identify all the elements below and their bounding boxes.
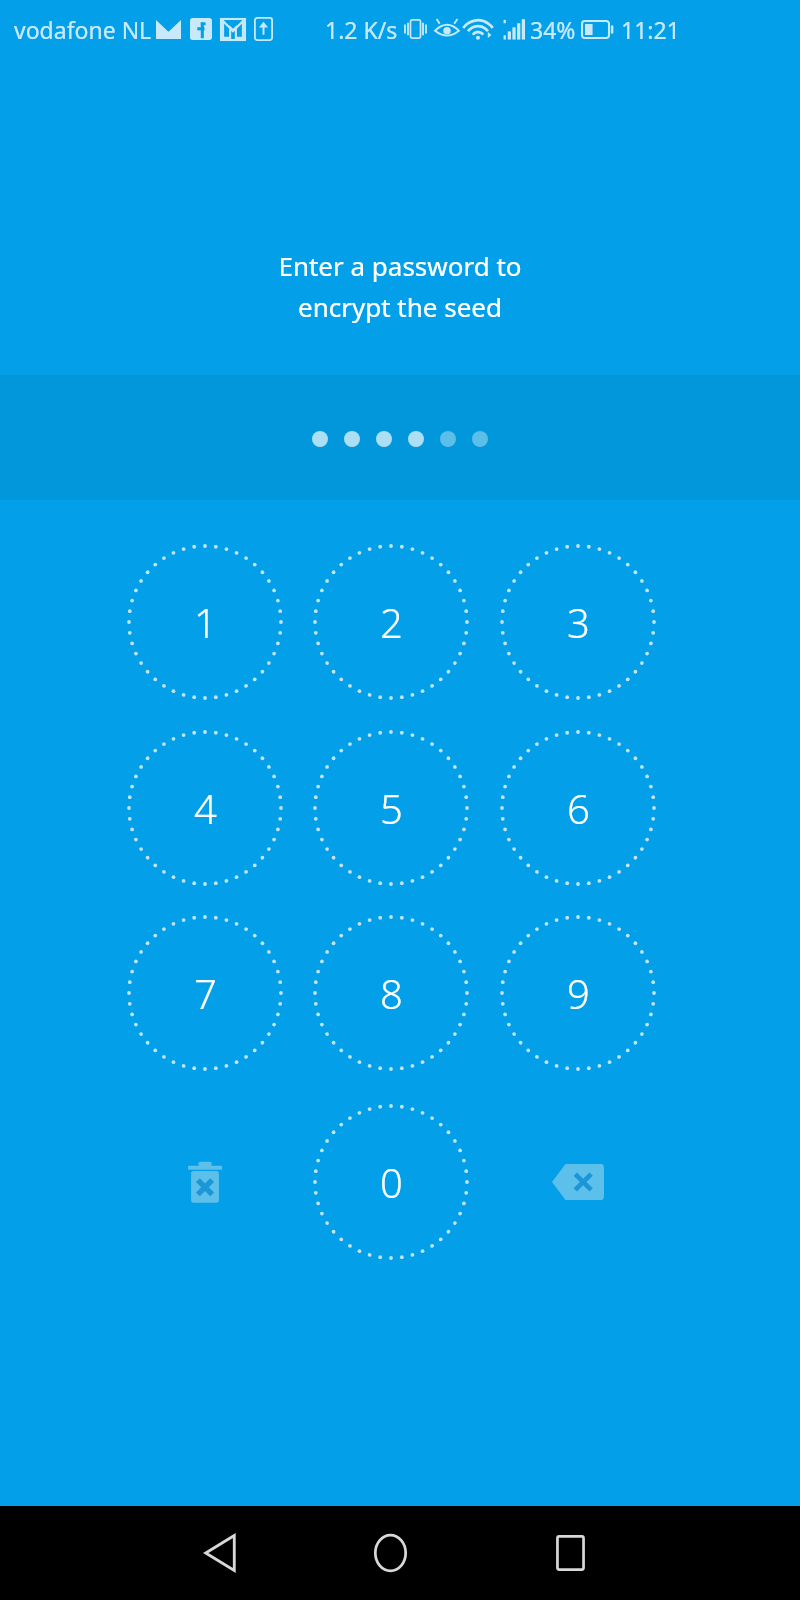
staticText: 8 xyxy=(380,966,403,1020)
button[interactable]: 4 xyxy=(127,730,283,886)
button[interactable]: 7 xyxy=(127,915,283,1071)
button[interactable]: Home xyxy=(343,1506,437,1600)
button[interactable]: 5 xyxy=(313,730,469,886)
button[interactable]: Clear password xyxy=(153,1130,257,1234)
staticText: 3 xyxy=(567,595,590,649)
staticText: 5 xyxy=(380,781,403,835)
button[interactable]: 8 xyxy=(313,915,469,1071)
staticText: 0 xyxy=(380,1155,403,1209)
button[interactable]: 9 xyxy=(500,915,656,1071)
staticText: 34% xyxy=(530,14,576,45)
staticText: 11:21 xyxy=(621,14,680,45)
staticText: 1 xyxy=(194,595,217,649)
staticText: 9 xyxy=(567,966,590,1020)
staticText: 2 xyxy=(380,595,403,649)
button[interactable]: 6 xyxy=(500,730,656,886)
button[interactable]: 2 xyxy=(313,544,469,700)
button[interactable]: 3 xyxy=(500,544,656,700)
button[interactable]: Back xyxy=(173,1506,267,1600)
staticText: 6 xyxy=(567,781,590,835)
staticText: 7 xyxy=(194,966,217,1020)
button[interactable]: Backspace xyxy=(526,1130,630,1234)
staticText: 1.2 K/s xyxy=(325,14,398,45)
staticText: vodafone NL xyxy=(14,14,152,45)
button[interactable]: 1 xyxy=(127,544,283,700)
staticText: 4 xyxy=(194,781,217,835)
button[interactable]: 0 xyxy=(313,1104,469,1260)
staticText: Enter a password to encrypt the seed xyxy=(0,248,800,325)
button[interactable]: Recent apps xyxy=(523,1506,617,1600)
